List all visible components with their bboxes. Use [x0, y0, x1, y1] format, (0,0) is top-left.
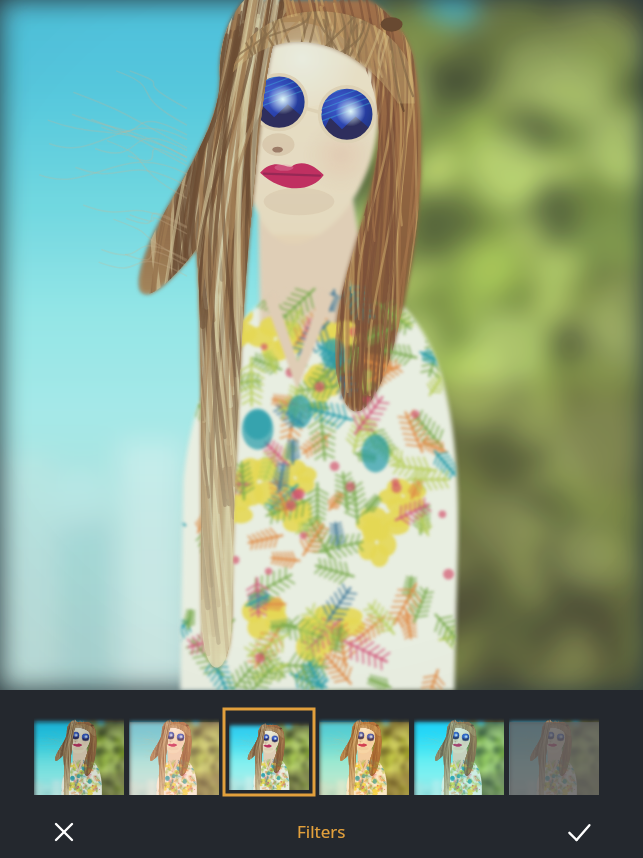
- staticText: Filters: [297, 820, 346, 843]
- button[interactable]: [509, 709, 599, 795]
- button[interactable]: Cancel: [44, 812, 84, 852]
- button[interactable]: Apply: [559, 812, 599, 852]
- button[interactable]: [224, 709, 314, 795]
- button[interactable]: Filters: [297, 820, 346, 843]
- button[interactable]: [34, 709, 124, 795]
- button[interactable]: [319, 709, 409, 795]
- button[interactable]: [129, 709, 219, 795]
- button[interactable]: [414, 709, 504, 795]
